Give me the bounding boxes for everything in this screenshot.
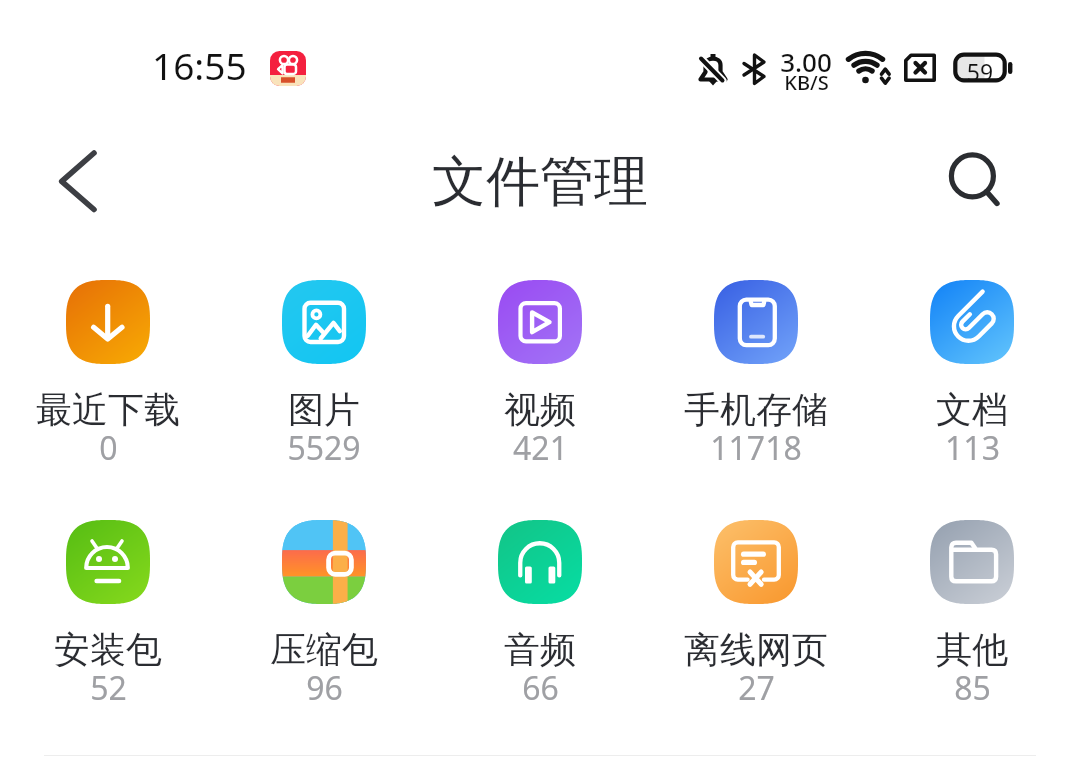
staticText: 3.00 <box>780 44 832 79</box>
staticText: 113 <box>945 426 1000 470</box>
staticText: 421 <box>513 426 568 470</box>
staticText: KB/S <box>784 69 829 96</box>
staticText: 手机存储 <box>684 387 828 432</box>
staticText: 11718 <box>710 426 802 470</box>
staticText: 离线网页 <box>684 627 828 672</box>
button[interactable]: 手机存储 <box>648 280 864 505</box>
staticText: 文件管理 <box>0 148 1080 216</box>
staticText: 图片 <box>288 387 360 432</box>
staticText: 其他 <box>936 627 1008 672</box>
staticText: 最近下载 <box>36 387 180 432</box>
button[interactable]: 最近下载 <box>0 280 216 505</box>
staticText: 音频 <box>504 627 576 672</box>
staticText: 安装包 <box>54 627 162 672</box>
staticText: 16:55 <box>152 40 247 90</box>
staticText: 27 <box>738 666 775 710</box>
button[interactable]: 视频 <box>432 280 648 505</box>
staticText: 85 <box>954 666 991 710</box>
staticText: 59 <box>957 56 1003 87</box>
staticText: 96 <box>306 666 343 710</box>
button[interactable]: 安装包 <box>0 520 216 745</box>
button[interactable]: Back <box>39 139 119 227</box>
button[interactable]: 其他 <box>864 520 1080 745</box>
staticText: 52 <box>90 666 127 710</box>
staticText: 视频 <box>504 387 576 432</box>
button[interactable]: 压缩包 <box>216 520 432 745</box>
button[interactable]: 图片 <box>216 280 432 505</box>
button[interactable]: 离线网页 <box>648 520 864 745</box>
button[interactable]: 音频 <box>432 520 648 745</box>
staticText: 文档 <box>936 387 1008 432</box>
staticText: 5529 <box>287 426 361 470</box>
button[interactable]: Search <box>936 140 1018 220</box>
staticText: 0 <box>99 426 118 470</box>
staticText: 66 <box>522 666 559 710</box>
staticText: 压缩包 <box>270 627 378 672</box>
button[interactable]: 文档 <box>864 280 1080 505</box>
